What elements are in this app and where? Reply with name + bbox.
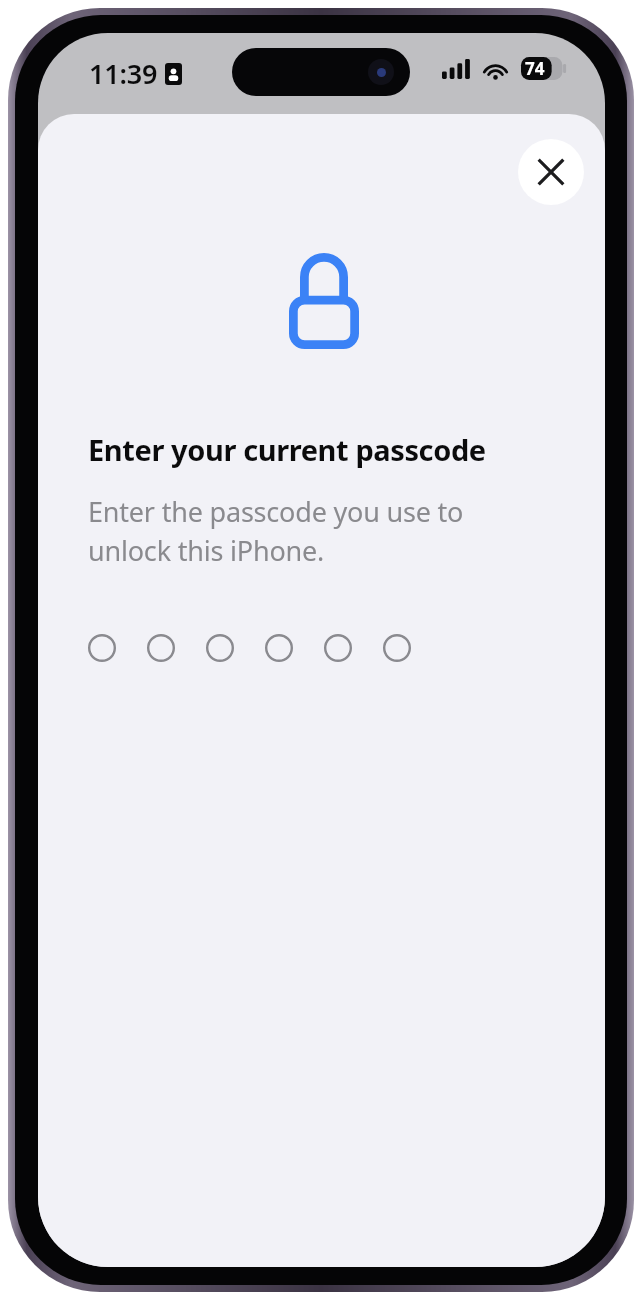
staticText: 11:39 (89, 55, 158, 92)
staticText: Enter your current passcode (88, 430, 486, 469)
staticText: Enter the passcode you use to unlock thi… (88, 493, 488, 569)
button[interactable]: Passcode field (88, 632, 411, 664)
button[interactable]: Close (518, 139, 584, 205)
staticText: 74 (525, 57, 545, 80)
